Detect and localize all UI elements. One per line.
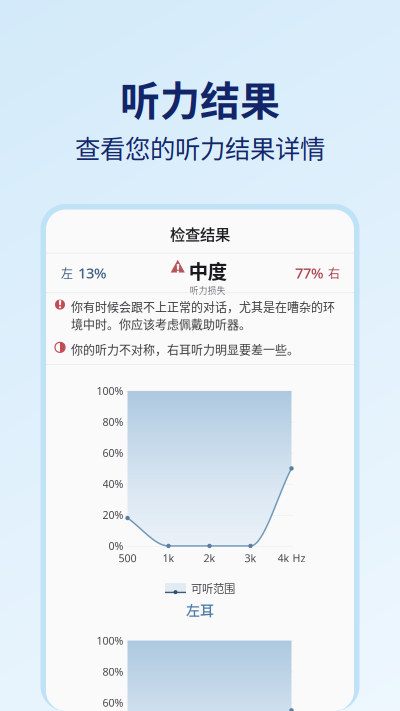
- staticText: 60%: [102, 695, 123, 710]
- staticText: 你有时候会跟不上正常的对话，尤其是在嘈杂的环境中时。你应该考虑佩戴助听器。: [71, 298, 335, 333]
- staticText: 右: [328, 264, 340, 282]
- staticText: 80%: [102, 664, 123, 679]
- staticText: 13%: [78, 263, 106, 283]
- staticText: !: [176, 260, 179, 276]
- button[interactable]: 检查结果: [46, 209, 354, 253]
- staticText: 60%: [102, 446, 123, 460]
- staticText: 20%: [102, 508, 123, 522]
- staticText: 听力结果: [120, 69, 280, 127]
- staticText: 2k: [203, 551, 215, 565]
- staticText: 检查结果: [170, 222, 230, 245]
- staticText: !: [58, 297, 61, 311]
- staticText: 80%: [102, 415, 123, 429]
- staticText: 查看您的听力结果详情: [75, 129, 325, 166]
- staticText: 500: [118, 551, 136, 565]
- staticText: 0%: [108, 539, 123, 553]
- staticText: 左: [61, 264, 73, 282]
- staticText: 中度: [189, 257, 227, 285]
- staticText: 77%: [295, 263, 323, 283]
- staticText: 听力损失: [190, 284, 226, 296]
- staticText: 40%: [102, 477, 123, 491]
- staticText: 可听范围: [191, 580, 235, 596]
- staticText: 100%: [96, 633, 123, 648]
- staticText: 1k: [162, 551, 174, 565]
- staticText: 你的听力不对称，右耳听力明显要差一些。: [71, 341, 299, 358]
- staticText: 100%: [96, 384, 123, 398]
- staticText: 左耳: [186, 599, 214, 620]
- button[interactable]: 左耳: [186, 596, 214, 620]
- staticText: 4k Hz: [277, 551, 305, 565]
- staticText: 3k: [244, 551, 256, 565]
